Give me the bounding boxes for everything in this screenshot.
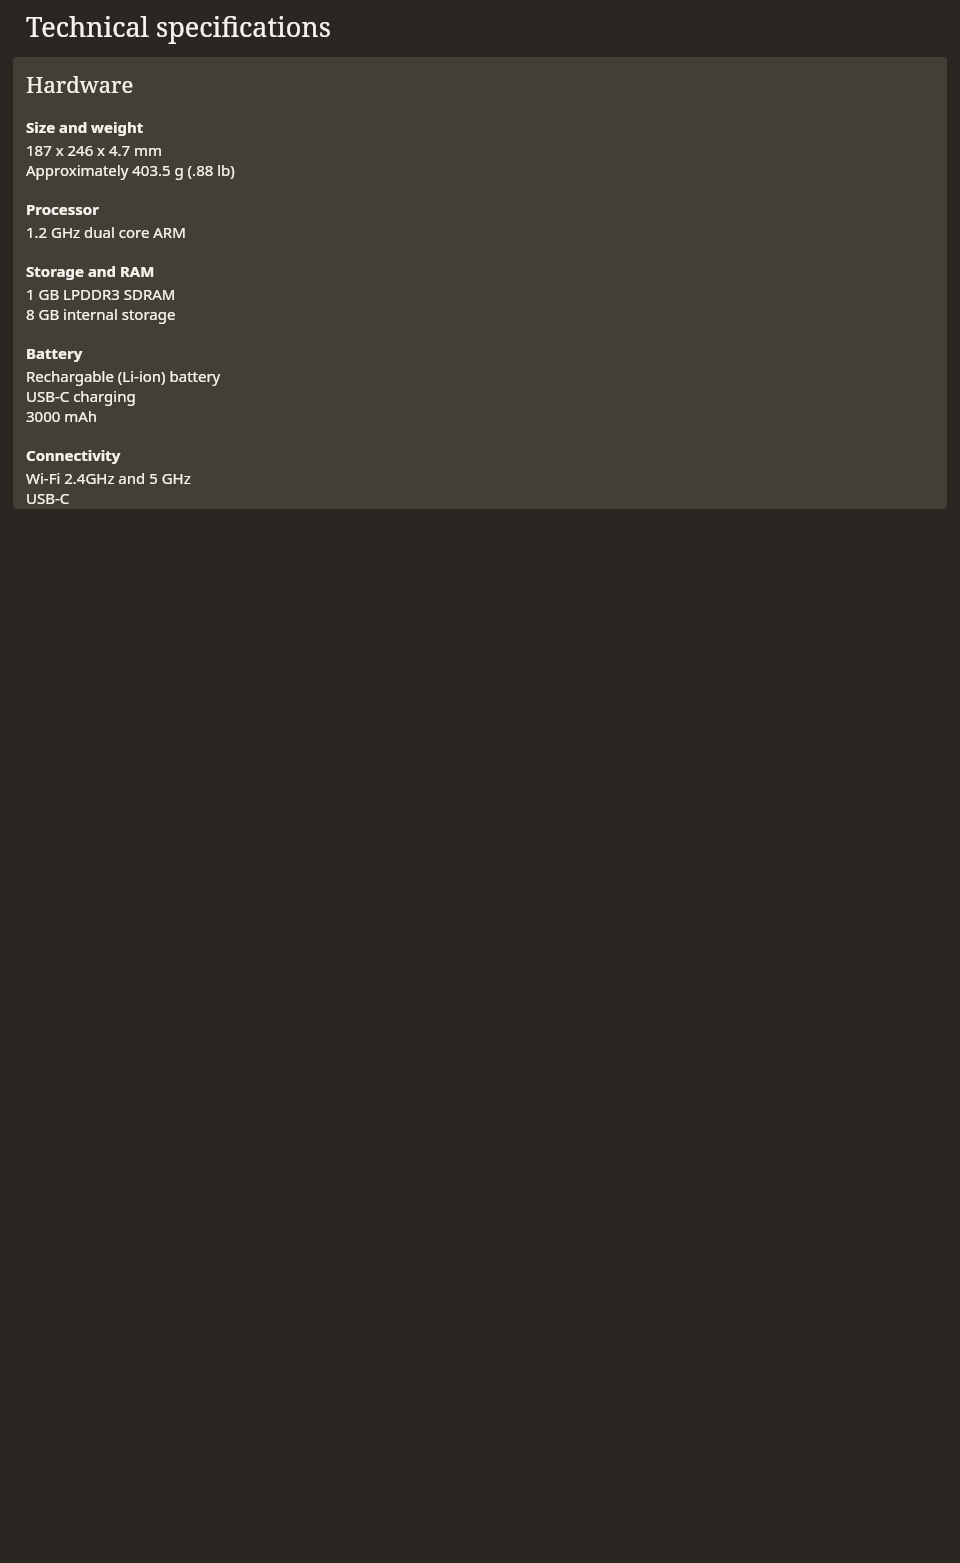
staticText: Storage and RAM — [26, 261, 155, 281]
staticText: 187 x 246 x 4.7 mm — [26, 140, 163, 160]
staticText: Hardware — [26, 69, 134, 99]
staticText: Connectivity — [26, 445, 121, 465]
staticText: Wi-Fi 2.4GHz and 5 GHz — [26, 468, 191, 488]
staticText: Approximately 403.5 g (.88 lb) — [26, 160, 235, 180]
staticText: Size and weight — [26, 117, 144, 137]
staticText: Rechargable (Li-ion) battery — [26, 366, 221, 386]
staticText: Processor — [26, 199, 99, 219]
staticText: 1.2 GHz dual core ARM — [26, 222, 186, 242]
staticText: 1 GB LPDDR3 SDRAM — [26, 284, 176, 304]
staticText: 3000 mAh — [26, 406, 98, 426]
staticText: Technical specifications — [26, 8, 331, 45]
button[interactable]: Hardware — [13, 57, 947, 509]
staticText: 8 GB internal storage — [26, 304, 176, 324]
staticText: Battery — [26, 343, 83, 363]
staticText: USB-C — [26, 488, 70, 508]
staticText: USB-C charging — [26, 386, 136, 406]
